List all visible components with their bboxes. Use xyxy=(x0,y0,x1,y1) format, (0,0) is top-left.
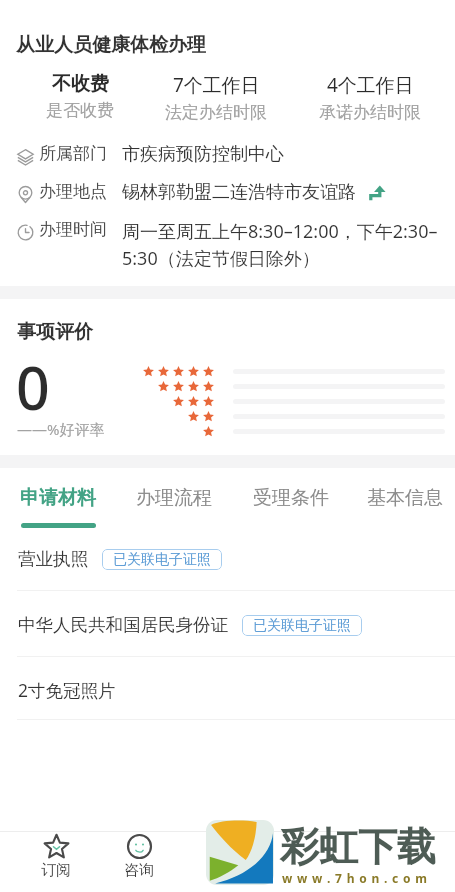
staticText: 基本信息 xyxy=(367,486,443,510)
staticText: 是否收费 xyxy=(46,100,114,121)
button[interactable]: 申请材料 xyxy=(0,486,116,536)
staticText: w w w . 7 h o n . c o m xyxy=(282,870,428,886)
staticText: 从业人员健康体检办理 xyxy=(16,33,206,57)
staticText: 事项评价 xyxy=(17,320,93,344)
staticText: 办理时间 xyxy=(39,219,107,240)
staticText: 咨询 xyxy=(124,861,154,880)
button[interactable]: 受理条件 xyxy=(233,486,349,536)
staticText: 0 xyxy=(16,347,50,427)
staticText: 已关联电子证照 xyxy=(253,617,351,635)
staticText: 订阅 xyxy=(41,861,71,880)
staticText: 所属部门 xyxy=(39,143,107,164)
button[interactable]: 办理流程 xyxy=(116,486,232,536)
staticText: 2寸免冠照片 xyxy=(18,678,116,702)
button[interactable]: 2寸免冠照片 xyxy=(0,668,455,712)
staticText: 营业执照 xyxy=(18,548,88,570)
staticText: 不收费 xyxy=(52,72,109,96)
staticText: 市疾病预防控制中心 xyxy=(122,143,284,166)
button[interactable]: 营业执照 xyxy=(0,537,455,581)
staticText: 承诺办结时限 xyxy=(319,102,421,123)
staticText: 已关联电子证照 xyxy=(113,551,211,569)
staticText: ——%好评率 xyxy=(17,419,105,439)
button[interactable]: Navigate xyxy=(369,184,387,202)
staticText: 彩虹下载 xyxy=(280,822,436,871)
button[interactable]: 咨询 xyxy=(99,832,179,892)
staticText: 周一至周五上午8:30–12:00，下午2:30–5:30（法定节假日除外） xyxy=(122,219,445,271)
staticText: 受理条件 xyxy=(253,486,329,510)
staticText: 锡林郭勒盟二连浩特市友谊路 xyxy=(122,181,356,204)
staticText: 申请材料 xyxy=(20,486,96,510)
staticText: 法定办结时限 xyxy=(165,102,267,123)
staticText: 办理流程 xyxy=(136,486,212,510)
button[interactable]: 基本信息 xyxy=(347,486,455,536)
staticText: 7个工作日 xyxy=(173,72,260,98)
staticText: 办理地点 xyxy=(39,181,107,202)
staticText: 4个工作日 xyxy=(327,72,414,98)
button[interactable]: 中华人民共和国居民身份证 xyxy=(0,603,455,647)
staticText: 中华人民共和国居民身份证 xyxy=(18,614,228,636)
button[interactable]: 订阅 xyxy=(16,832,96,892)
